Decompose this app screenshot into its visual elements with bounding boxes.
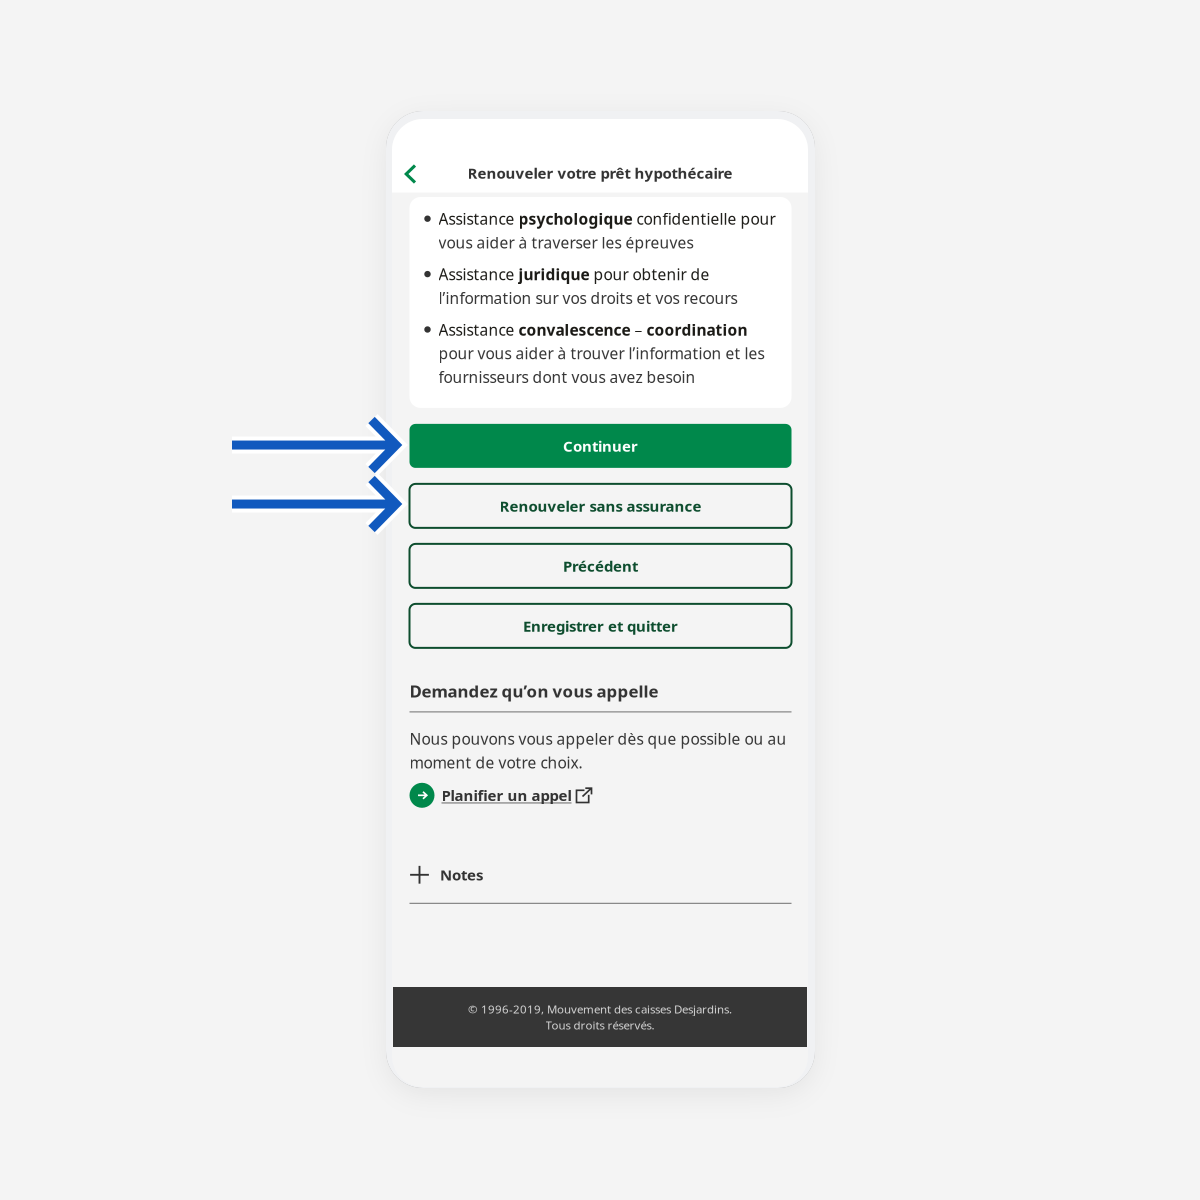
staticText: Renouveler sans assurance <box>499 496 701 516</box>
button[interactable]: Continuer <box>409 424 791 468</box>
staticText: Enregistrer et quitter <box>523 616 678 636</box>
staticText: l’information sur vos droits et vos reco… <box>438 287 737 308</box>
staticText: Continuer <box>563 436 638 456</box>
staticText: Planifier un appel <box>441 785 571 805</box>
staticText: moment de votre choix. <box>409 752 582 773</box>
staticText: Demandez qu’on vous appelle <box>409 679 658 702</box>
staticText: Renouveler votre prêt hypothécaire <box>467 163 732 183</box>
staticText: © 1996-2019, Mouvement des caisses Desja… <box>468 1001 732 1017</box>
staticText: Assistance convalescence – coordination <box>438 319 747 340</box>
staticText: vous aider à traverser les épreuves <box>438 232 693 253</box>
staticText: Assistance juridique pour obtenir de <box>438 264 709 284</box>
button[interactable]: Précédent <box>409 544 791 588</box>
button[interactable]: Renouveler sans assurance <box>409 484 791 528</box>
staticText: Nous pouvons vous appeler dès que possib… <box>409 728 786 749</box>
staticText: fournisseurs dont vous avez besoin <box>438 366 695 388</box>
staticText: Tous droits réservés. <box>545 1017 654 1033</box>
staticText: Précédent <box>563 556 638 576</box>
staticText: Notes <box>440 865 483 885</box>
staticText: pour vous aider à trouver l’information … <box>438 343 764 364</box>
button[interactable]: Notes <box>409 863 791 887</box>
button[interactable]: Planifier un appel <box>409 782 791 808</box>
button[interactable]: Enregistrer et quitter <box>409 604 791 648</box>
staticText: Assistance psychologique confidentielle … <box>438 209 775 229</box>
button[interactable]: Retour <box>391 152 429 196</box>
